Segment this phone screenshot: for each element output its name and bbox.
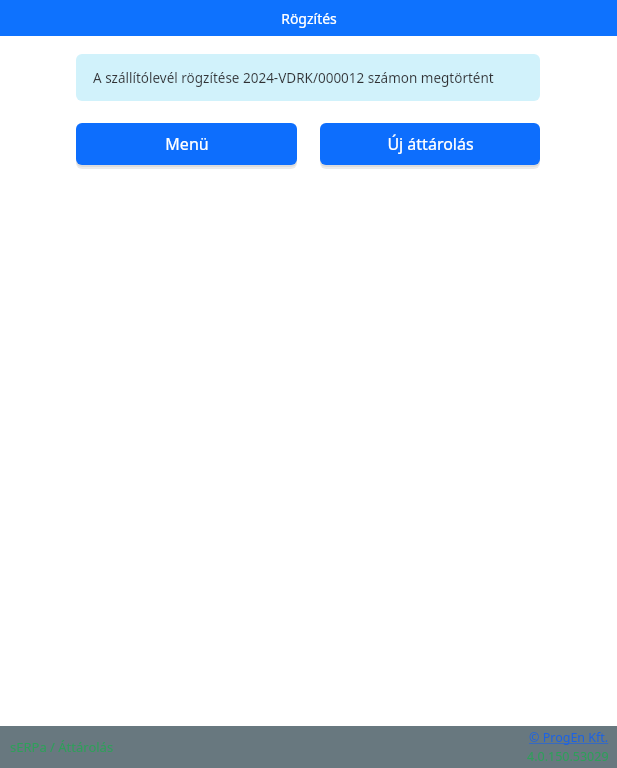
- staticText: sERPa / Áttárolás: [10, 738, 114, 756]
- button[interactable]: © ProgEn Kft.: [529, 729, 609, 746]
- button[interactable]: A szállítólevél rögzítése 2024-VDRK/0000…: [76, 54, 540, 101]
- staticText: 4.0.150.53029: [527, 748, 609, 765]
- button[interactable]: Menü: [76, 123, 297, 165]
- staticText: A szállítólevél rögzítése 2024-VDRK/0000…: [93, 69, 494, 87]
- staticText: Menü: [165, 133, 209, 155]
- staticText: Új áttárolás: [387, 133, 474, 155]
- staticText: Rögzítés: [281, 9, 337, 28]
- button[interactable]: Új áttárolás: [320, 123, 540, 165]
